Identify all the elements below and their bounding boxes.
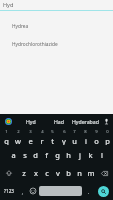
staticText: j (79, 150, 81, 160)
staticText: t (51, 136, 54, 145)
button[interactable]: 4 (36, 129, 47, 145)
button[interactable]: b (63, 165, 74, 181)
staticText: Hydrea (12, 23, 29, 30)
button[interactable]: 9 (91, 129, 102, 145)
button[interactable]: m (85, 165, 96, 181)
staticText: b (66, 168, 71, 178)
button[interactable]: g (52, 147, 63, 163)
staticText: o (94, 136, 99, 145)
button[interactable]: Emoji (27, 182, 38, 200)
staticText: Hyd (26, 118, 36, 125)
button[interactable]: ?123 (0, 183, 18, 199)
staticText: p (105, 136, 110, 145)
staticText: q (4, 136, 9, 145)
button[interactable]: 5 (47, 129, 58, 145)
button[interactable]: Had (45, 114, 72, 128)
staticText: l (101, 150, 103, 160)
staticText: z (22, 168, 26, 178)
button[interactable]: h (63, 147, 74, 163)
staticText: w (15, 136, 21, 145)
button[interactable]: n (74, 165, 85, 181)
staticText: k (88, 150, 93, 160)
button[interactable]: j (74, 147, 85, 163)
staticText: Had (54, 118, 64, 125)
staticText: , (21, 186, 24, 196)
staticText: c (45, 168, 49, 178)
button[interactable]: s (19, 147, 30, 163)
button[interactable]: 3 (24, 129, 36, 145)
staticText: r (40, 136, 44, 145)
staticText: 7 (73, 129, 76, 135)
staticText: 9 (95, 129, 98, 135)
button[interactable]: 1 (0, 129, 12, 145)
staticText: f (45, 150, 48, 160)
button[interactable]: Voice input (99, 114, 113, 128)
staticText: e (28, 136, 33, 145)
button[interactable]: a (7, 147, 19, 163)
staticText: a (11, 150, 16, 160)
button[interactable]: Hydrea (0, 19, 113, 34)
staticText: ?123 (4, 188, 14, 194)
staticText: d (33, 150, 38, 160)
staticText: i (85, 136, 87, 145)
button[interactable]: Space (39, 186, 82, 196)
staticText: 1 (5, 129, 8, 135)
button[interactable]: . (83, 183, 93, 199)
button[interactable]: Google (0, 114, 17, 128)
staticText: s (23, 150, 27, 160)
staticText: Hyd (3, 1, 14, 8)
button[interactable]: 0 (102, 129, 113, 145)
button[interactable]: x (30, 165, 41, 181)
button[interactable]: c (41, 165, 52, 181)
staticText: y (62, 136, 66, 145)
button[interactable]: Hyd (17, 114, 45, 128)
button[interactable]: l (96, 147, 107, 163)
staticText: 0 (106, 129, 109, 135)
button[interactable]: 2 (12, 129, 24, 145)
button[interactable]: k (85, 147, 96, 163)
staticText: Hyderabad (72, 118, 99, 125)
staticText: 5 (51, 129, 54, 135)
button[interactable]: 7 (69, 129, 80, 145)
staticText: g (55, 150, 60, 160)
button[interactable]: Search (98, 186, 109, 197)
staticText: 6 (63, 129, 66, 135)
button[interactable]: Backspace (96, 164, 113, 182)
staticText: 4 (41, 129, 44, 135)
button[interactable]: , (18, 183, 27, 199)
button[interactable]: 8 (80, 129, 91, 145)
staticText: x (34, 168, 38, 178)
button[interactable]: d (30, 147, 41, 163)
button[interactable]: 6 (58, 129, 69, 145)
staticText: 8 (84, 129, 87, 135)
staticText: m (87, 168, 95, 178)
staticText: u (72, 136, 77, 145)
button[interactable]: z (18, 165, 30, 181)
button[interactable]: Shift (0, 164, 18, 182)
button[interactable]: Hyd (0, 0, 113, 10)
button[interactable]: f (41, 147, 52, 163)
staticText: Hydrochlorothiazide (12, 41, 58, 48)
button[interactable]: Hyderabad (72, 114, 99, 128)
button[interactable]: Hydrochlorothiazide (0, 37, 113, 52)
staticText: 2 (17, 129, 20, 135)
button[interactable]: v (52, 165, 63, 181)
staticText: . (87, 186, 90, 196)
staticText: 3 (29, 129, 32, 135)
staticText: n (77, 168, 82, 178)
staticText: v (56, 168, 60, 178)
staticText: h (66, 150, 71, 160)
